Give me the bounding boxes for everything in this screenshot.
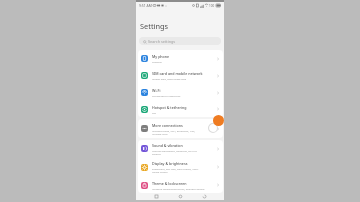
button[interactable]: Wi-Fi — [138, 84, 223, 101]
button[interactable]: More connections — [138, 119, 223, 138]
staticText: Settings — [140, 21, 169, 31]
button[interactable]: Theme & lockscreen — [138, 177, 223, 193]
button[interactable]: Sound & vibration — [138, 140, 223, 157]
staticText: Volume adjustment, Ringtone, Do Not Dist… — [152, 149, 205, 155]
button[interactable]: Search settings — [139, 37, 221, 45]
button[interactable]: Hotspot & tethering — [138, 101, 223, 117]
staticText: More connections — [152, 123, 183, 128]
staticText: Search settings — [148, 39, 176, 44]
staticText: 9:51 AM — [139, 3, 152, 8]
staticText: SIM card and mobile network — [152, 71, 203, 76]
staticText: Brightness, Eye care, Dark theme, Auto-r… — [152, 167, 205, 173]
button[interactable]: Back — [200, 192, 208, 200]
staticText: Sound & vibration — [152, 143, 183, 148]
staticText: Hotspot & tethering — [152, 105, 187, 110]
staticText: Off — [152, 111, 156, 114]
staticText: Mobile data, Data usage type — [152, 77, 187, 80]
staticText: 100 — [209, 4, 215, 8]
staticText: Theme & lockscreen — [152, 181, 187, 186]
staticText: Display & brightness — [152, 161, 188, 166]
button[interactable]: Home — [176, 192, 184, 200]
staticText: OnePlus — [152, 60, 162, 63]
staticText: Airplane mode, VPN, Bluetooth, NFC, Andr… — [152, 129, 205, 135]
staticText: My phone — [152, 54, 170, 59]
staticText: Connected to Xiaomi-5G — [152, 94, 181, 97]
button[interactable]: Recents — [152, 192, 160, 200]
button[interactable]: My phone — [138, 50, 223, 67]
staticText: Amazing theme/fonts/icons, beautiful pho… — [152, 187, 205, 190]
staticText: Wi-Fi — [152, 88, 161, 93]
button[interactable]: SIM card and mobile network — [138, 67, 223, 84]
button[interactable]: Display & brightness — [138, 157, 223, 177]
